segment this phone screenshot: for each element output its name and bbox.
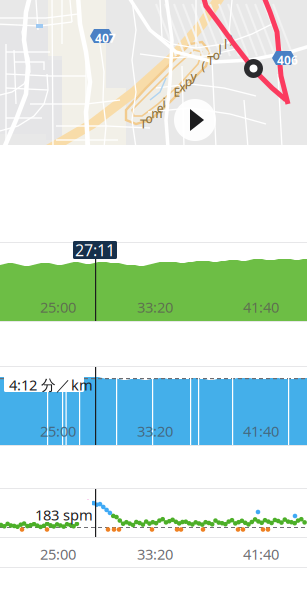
staticText: x <box>179 79 186 95</box>
staticText: m <box>151 105 162 121</box>
staticText: 407 <box>95 30 116 46</box>
staticText: 33:20 <box>137 297 173 317</box>
staticText: l <box>224 36 227 52</box>
staticText: 41:40 <box>243 544 279 564</box>
staticText: 25:00 <box>40 297 76 317</box>
staticText: T <box>140 116 147 132</box>
staticText: i <box>162 95 165 111</box>
staticText <box>196 63 199 79</box>
staticText: ) <box>230 31 234 47</box>
staticText: e <box>157 100 164 116</box>
staticText: 25:00 <box>40 421 76 441</box>
button[interactable]: Play route animation <box>174 99 216 141</box>
staticText: l <box>218 42 221 58</box>
staticText: 4:12 分／km <box>9 375 93 394</box>
staticText: E <box>174 84 181 100</box>
staticText: ( <box>202 58 206 74</box>
staticText: o <box>146 111 153 127</box>
staticText <box>168 89 171 105</box>
staticText: o <box>213 47 220 63</box>
staticText: 406 <box>277 52 298 68</box>
staticText: 27:11 <box>75 239 115 261</box>
staticText: T <box>207 52 214 68</box>
staticText: 41:40 <box>243 421 279 441</box>
staticText: 33:20 <box>137 544 173 564</box>
staticText: p <box>185 74 192 89</box>
staticText: 25:00 <box>40 544 76 564</box>
staticText: 41:40 <box>243 297 279 317</box>
staticText: y <box>190 68 196 84</box>
staticText: 183 spm <box>35 505 93 524</box>
staticText: 33:20 <box>137 421 173 441</box>
